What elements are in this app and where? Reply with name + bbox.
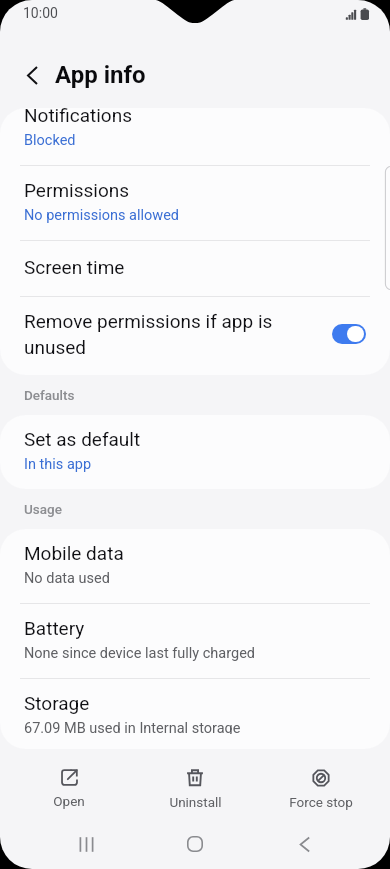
staticText: In this app [24,452,92,474]
staticText: Screen time [24,254,125,280]
button[interactable]: Recents [32,819,140,869]
button[interactable]: Remove permissions if app is unused [0,297,390,375]
button[interactable]: Back [249,819,358,869]
button[interactable]: Uninstall [132,751,258,819]
staticText: No permissions allowed [24,203,180,225]
staticText: App info [55,61,146,89]
button[interactable]: Screen time [0,241,390,297]
staticText: Usage [24,501,62,517]
button[interactable]: Storage [0,679,390,749]
staticText: Open [53,793,85,809]
button[interactable]: Home [140,819,249,869]
staticText: Notifications [24,108,133,128]
button[interactable]: Mobile data [0,529,390,604]
staticText: Permissions [24,177,130,203]
staticText: Battery [24,615,85,641]
button[interactable]: Navigate up [12,55,52,95]
staticText: Defaults [24,387,75,403]
button[interactable]: Permissions [0,166,390,241]
staticText: None since device last fully charged [24,641,256,663]
button[interactable]: Force stop [258,751,384,819]
staticText: Remove permissions if app is unused [24,308,320,360]
staticText: 67.09 MB used in Internal storage [24,716,241,734]
button[interactable]: Battery [0,604,390,679]
staticText: Blocked [24,128,76,150]
button[interactable]: Set as default [0,415,390,489]
staticText: No data used [24,566,110,588]
staticText: Mobile data [24,540,124,566]
staticText: Uninstall [169,794,222,810]
staticText: 10:00 [23,5,58,21]
button[interactable]: Notifications [0,108,390,166]
button[interactable]: Remove permissions toggle [332,324,366,344]
staticText: Storage [24,690,90,716]
staticText: Set as default [24,426,141,452]
button[interactable]: Open [6,751,132,819]
staticText: Force stop [289,794,353,810]
